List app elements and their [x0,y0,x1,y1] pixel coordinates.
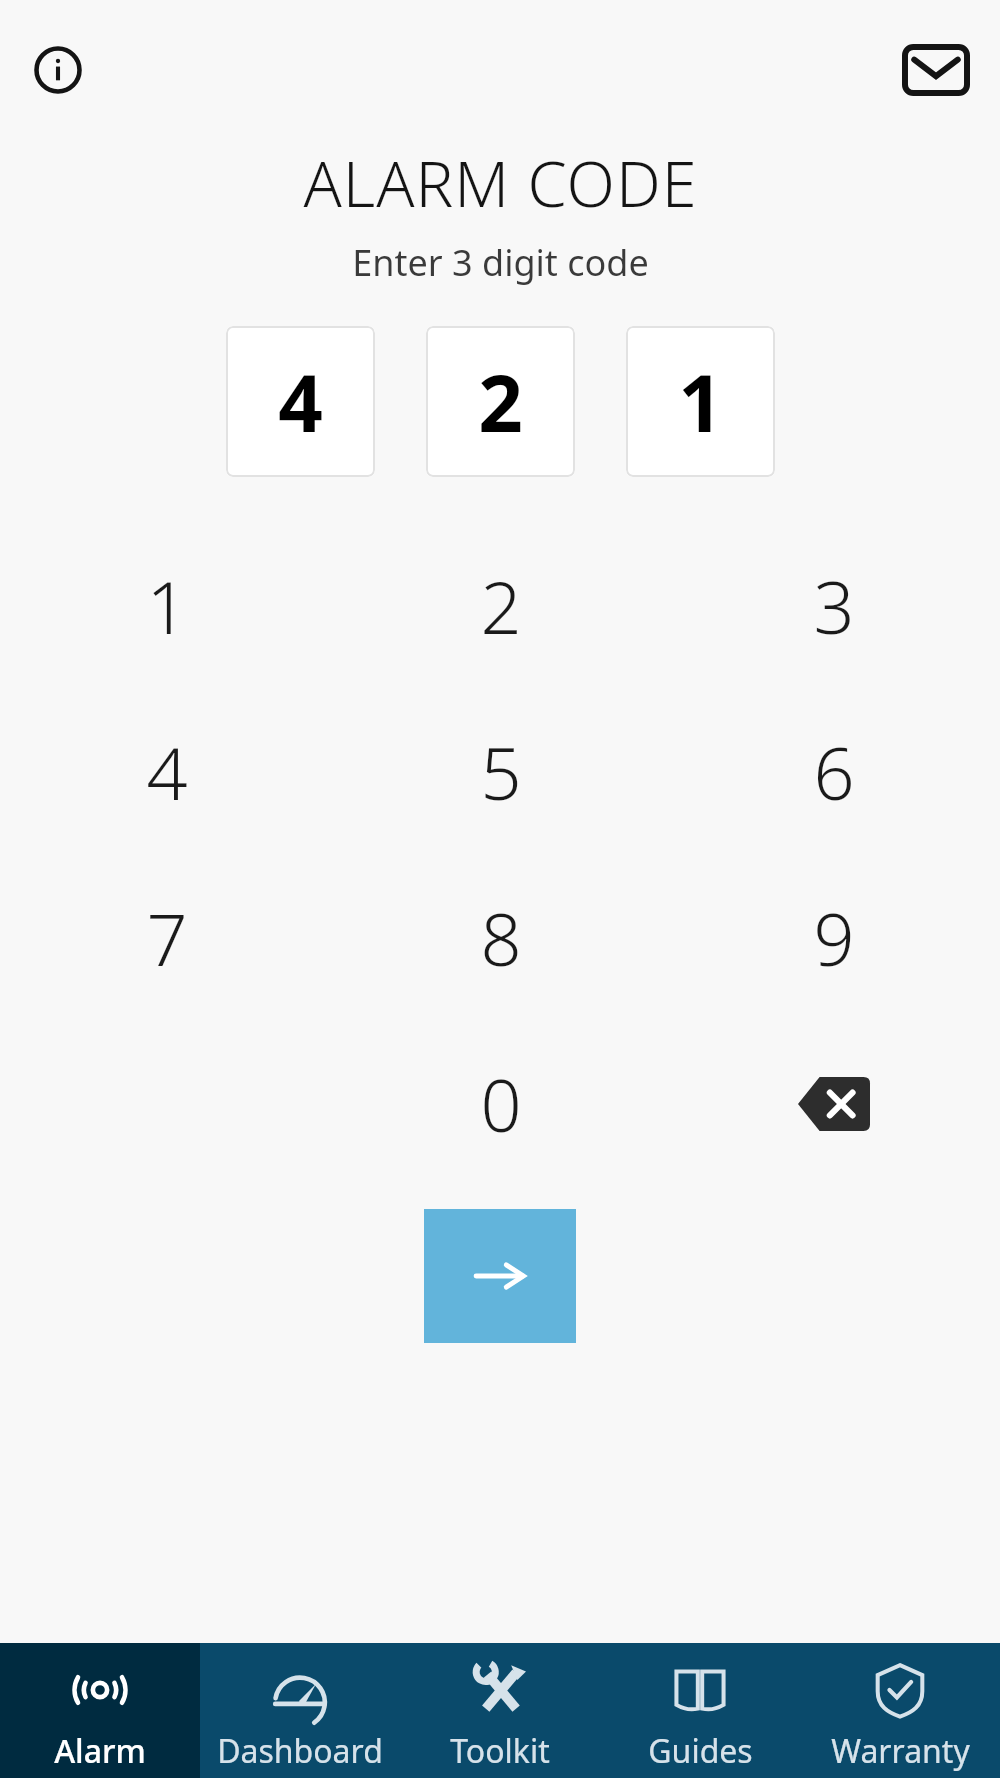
staticText: 4 [146,723,188,821]
button[interactable]: 1 [626,326,775,477]
staticText: Guides [648,1729,753,1773]
staticText: 0 [480,1055,522,1153]
staticText: 8 [480,889,522,987]
button[interactable]: Toolkit [400,1643,600,1778]
staticText: 4 [278,349,323,455]
button[interactable]: 0 [334,1021,667,1187]
button[interactable]: 2 [426,326,575,477]
button[interactable]: Alarm [0,1643,200,1778]
button[interactable]: 6 [667,689,1000,855]
button[interactable]: 9 [667,855,1000,1021]
staticText: Dashboard [217,1729,383,1773]
staticText: 6 [813,723,855,821]
button[interactable]: Guides [600,1643,800,1778]
staticText: Alarm [54,1729,146,1773]
staticText: 2 [478,349,523,455]
button[interactable]: 2 [334,523,667,689]
staticText: 1 [678,349,723,455]
staticText: Warranty [831,1729,970,1773]
staticText: ALARM CODE [303,140,698,226]
button[interactable]: 3 [667,523,1000,689]
staticText: 1 [146,557,188,655]
staticText: 7 [146,889,188,987]
button[interactable]: 8 [334,855,667,1021]
staticText: 3 [813,557,855,655]
staticText: 9 [813,889,855,987]
button[interactable]: Backspace [667,1021,1000,1187]
button[interactable]: 7 [0,855,334,1021]
button[interactable]: 1 [0,523,334,689]
staticText: 2 [480,557,522,655]
button[interactable]: Information [26,38,90,102]
button[interactable]: Submit [424,1209,576,1343]
button[interactable]: Messages [898,32,974,108]
staticText: Enter 3 digit code [352,238,649,287]
button[interactable]: Warranty [800,1643,1000,1778]
button[interactable]: 4 [226,326,375,477]
button[interactable]: 5 [334,689,667,855]
button[interactable]: Dashboard [200,1643,400,1778]
staticText: Toolkit [450,1729,550,1773]
button[interactable]: 4 [0,689,334,855]
staticText: 5 [480,723,522,821]
